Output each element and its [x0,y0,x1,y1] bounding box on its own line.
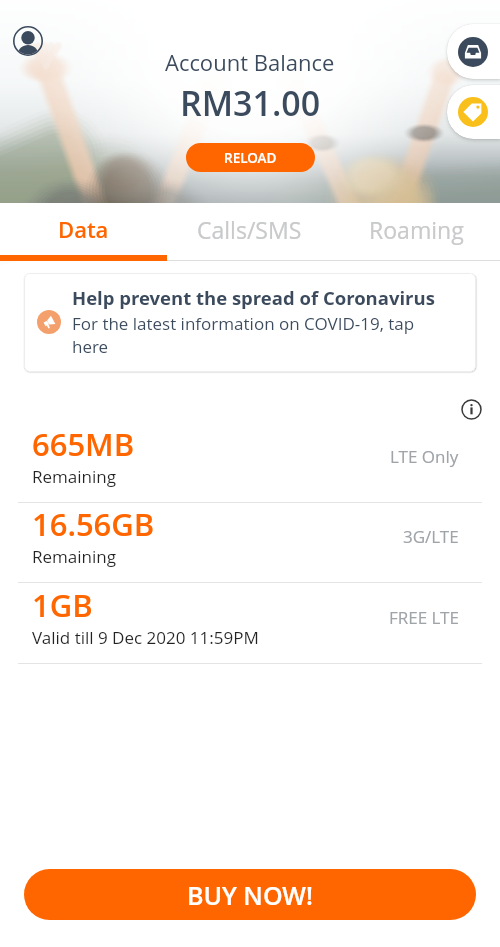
staticText: 665MB [32,423,135,465]
staticText: 16.56GB [32,503,155,545]
staticText: 1GB [32,584,93,626]
staticText: Data [58,214,109,244]
staticText: RELOAD [224,149,277,167]
staticText: RM31.00 [180,80,321,126]
button[interactable]: 1GB [0,583,500,663]
staticText: LTE Only [390,445,459,468]
button[interactable]: Calls/SMS [166,203,333,255]
button[interactable]: 665MB [0,422,500,502]
button[interactable]: Help prevent the spread of Coronavirus [24,273,476,372]
button[interactable]: BUY NOW! [24,869,476,920]
button[interactable]: Inbox [447,24,500,79]
staticText: Help prevent the spread of Coronavirus [72,285,435,310]
staticText: FREE LTE [389,606,459,629]
button[interactable]: 16.56GB [0,502,500,582]
staticText: Account Balance [165,47,335,77]
button[interactable]: Offers [447,85,500,139]
staticText: Remaining [32,545,117,568]
button[interactable]: Information [461,399,482,420]
staticText: Valid till 9 Dec 2020 11:59PM [32,626,259,649]
button[interactable]: Data [0,203,166,255]
staticText: Roaming [369,214,464,245]
staticText: Calls/SMS [197,214,302,245]
staticText: 3G/LTE [403,525,459,548]
button[interactable]: Roaming [333,203,500,255]
staticText: For the latest information on COVID-19, … [72,312,417,358]
button[interactable]: Profile [13,26,43,56]
staticText: BUY NOW! [187,878,313,912]
staticText: Remaining [32,465,117,488]
button[interactable]: RELOAD [186,143,315,172]
